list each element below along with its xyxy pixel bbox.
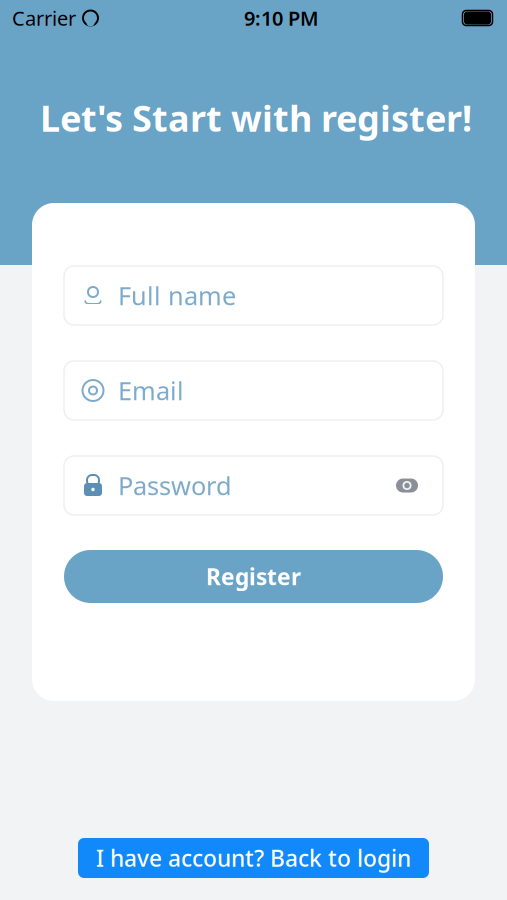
staticText: Carrier xyxy=(12,5,76,31)
button[interactable]: Show password xyxy=(389,470,425,500)
staticText: 9:10 PM xyxy=(244,5,319,31)
staticText: Let's Start with register! xyxy=(40,94,472,142)
staticText: I have account? Back to login xyxy=(96,843,411,873)
button[interactable]: I have account? Back to login xyxy=(78,838,429,878)
button[interactable]: Register xyxy=(64,550,443,603)
staticText: Full name xyxy=(118,279,236,312)
staticText: Email xyxy=(118,374,184,407)
staticText: Register xyxy=(206,561,301,591)
staticText: Password xyxy=(118,469,232,502)
